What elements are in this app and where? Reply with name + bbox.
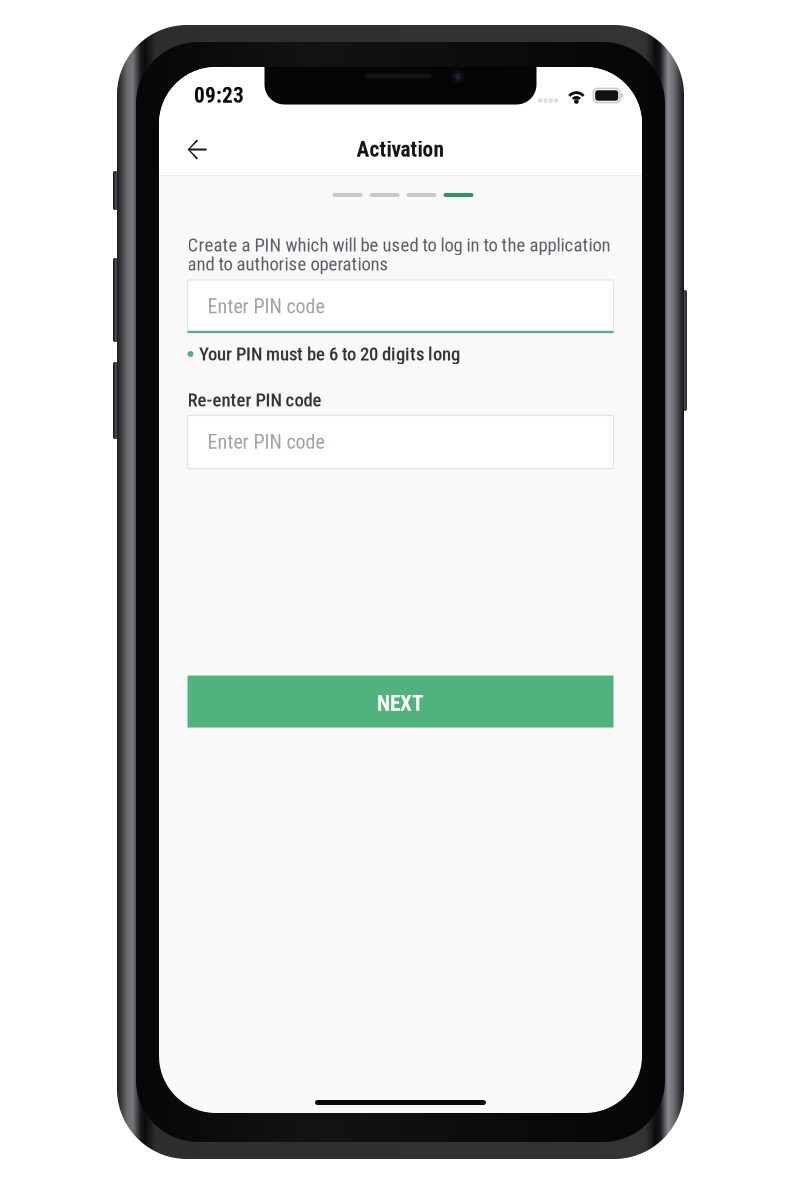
staticText: 09:23 — [194, 83, 244, 108]
staticText: and to authorise operations — [187, 253, 388, 275]
staticText: Activation — [356, 137, 444, 162]
staticText: Enter PIN code — [207, 295, 324, 318]
staticText: Create a PIN which will be used to log i… — [187, 234, 610, 256]
staticText: Enter PIN code — [207, 430, 324, 454]
button[interactable]: NEXT — [187, 675, 613, 727]
staticText: Your PIN must be 6 to 20 digits long — [199, 343, 460, 365]
staticText: Re-enter PIN code — [187, 389, 321, 411]
button[interactable]: Back — [159, 124, 235, 175]
staticText: NEXT — [377, 691, 424, 716]
